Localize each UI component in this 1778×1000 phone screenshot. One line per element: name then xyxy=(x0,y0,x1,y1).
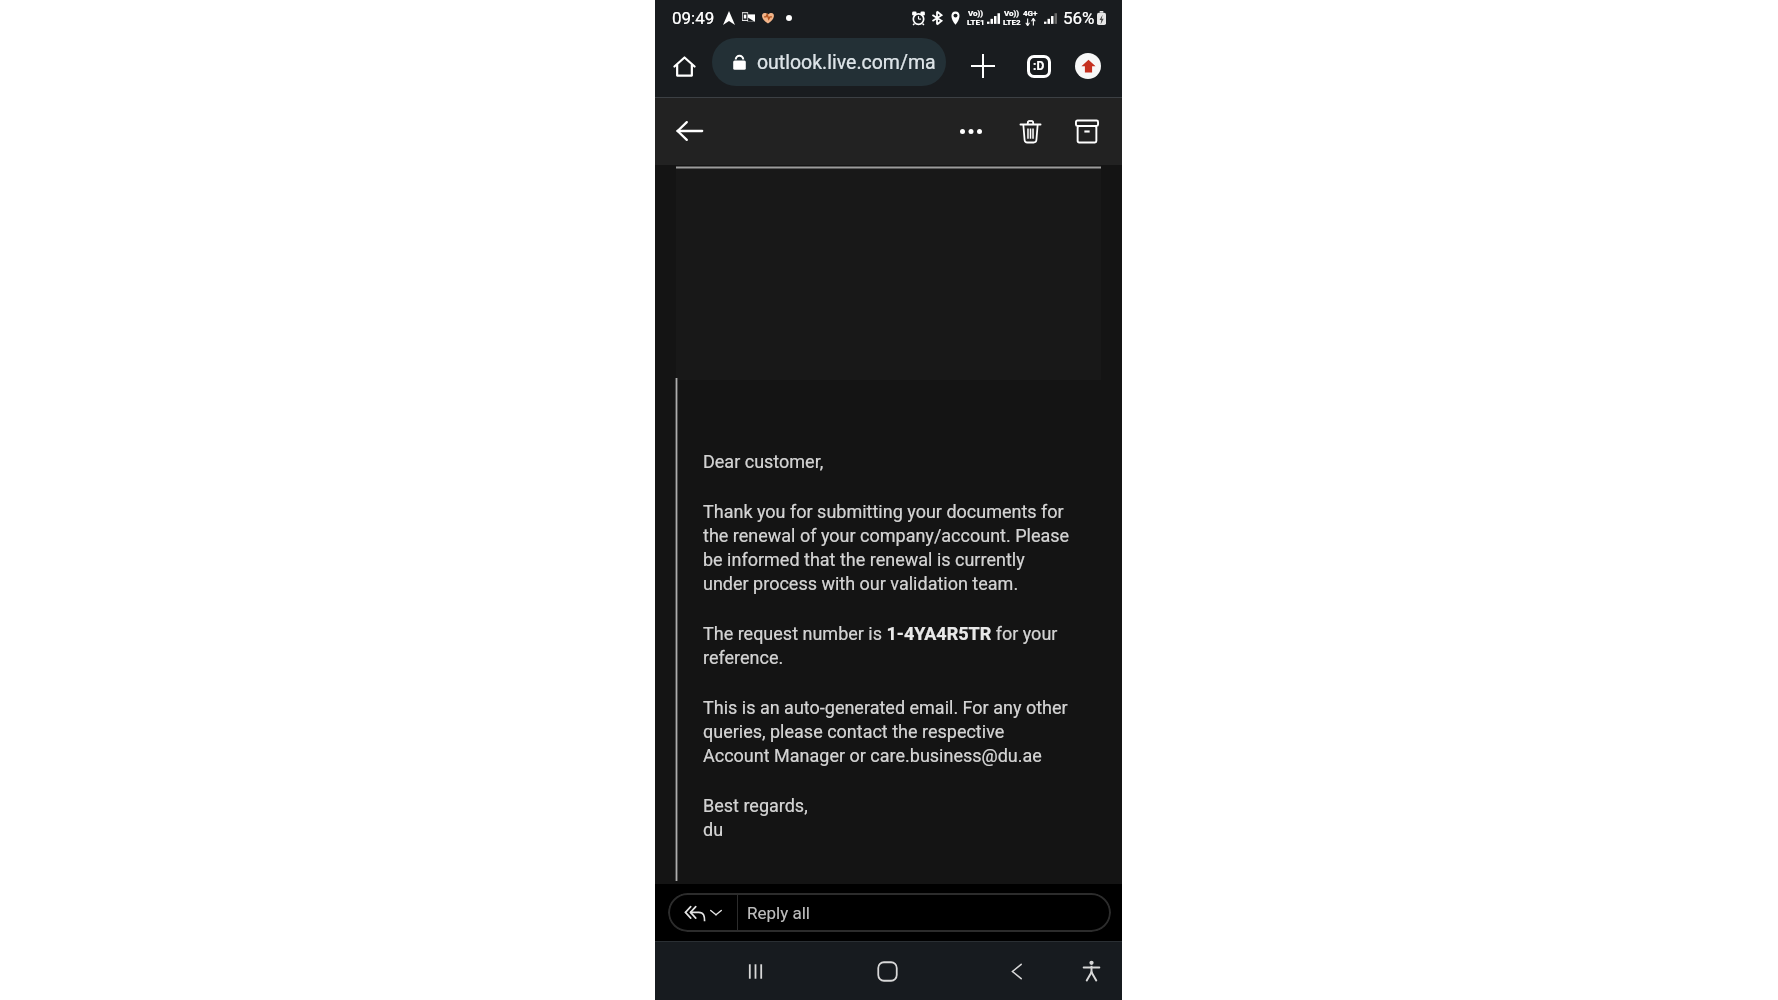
staticText: Reply all xyxy=(747,903,810,923)
staticText: This is an auto-generated email. For any… xyxy=(703,697,1071,766)
button[interactable]: Reply all xyxy=(738,893,1111,932)
button[interactable]: Accessibility xyxy=(1069,949,1113,993)
button[interactable]: More options xyxy=(951,111,991,151)
staticText: :D xyxy=(1033,59,1045,73)
staticText: LTE2 xyxy=(1003,18,1021,27)
button[interactable]: Back xyxy=(669,111,709,151)
staticText: The request number is 1-4YA4R5TR for you… xyxy=(703,623,1071,668)
staticText: Vo)) xyxy=(1004,9,1020,18)
staticText: 09:49 xyxy=(672,8,715,28)
button[interactable]: Reply all options xyxy=(668,893,737,932)
staticText: Dear customer, xyxy=(703,451,824,472)
staticText: Vo)) xyxy=(968,9,984,18)
button[interactable]: Home xyxy=(666,48,702,84)
button[interactable]: Tabs xyxy=(1021,48,1057,84)
button[interactable]: Home xyxy=(865,949,909,993)
staticText: outlook.live.com/ma xyxy=(757,51,936,74)
button[interactable]: outlook.live.com/ma xyxy=(712,38,946,86)
staticText: LTE1 xyxy=(967,18,985,27)
button[interactable]: Profile xyxy=(1070,48,1106,84)
button[interactable]: Back xyxy=(995,949,1039,993)
staticText: Best regards, du xyxy=(703,795,808,840)
button[interactable]: Delete xyxy=(1010,111,1050,151)
staticText: 4G+ xyxy=(1023,9,1038,18)
staticText: 56% xyxy=(1063,8,1095,28)
button[interactable]: Recent apps xyxy=(733,949,777,993)
button[interactable]: Archive xyxy=(1067,111,1107,151)
staticText: Thank you for submitting your documents … xyxy=(703,501,1071,594)
button[interactable]: New tab xyxy=(965,48,1001,84)
